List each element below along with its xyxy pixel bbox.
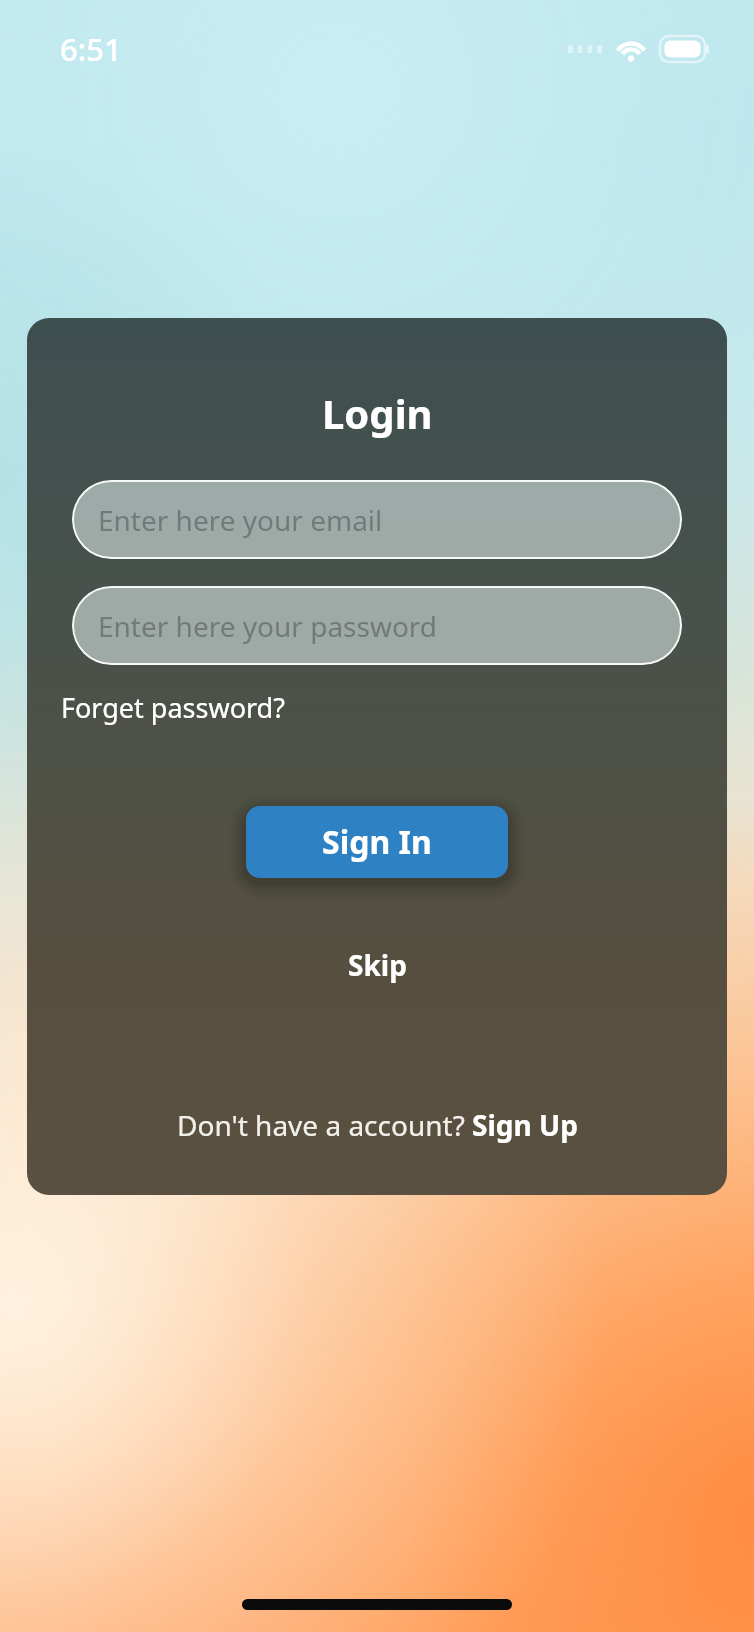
button[interactable]: Forget password? [61, 685, 285, 730]
staticText: Don't have a account? Sign Up [177, 1106, 578, 1144]
button[interactable]: Sign In [246, 806, 508, 878]
button[interactable]: Skip [326, 938, 429, 992]
staticText: 6:51 [60, 28, 122, 70]
staticText: Enter here your email [98, 501, 383, 539]
staticText: Skip [348, 946, 407, 984]
button[interactable]: Enter here your password [72, 586, 682, 665]
staticText: Forget password? [61, 689, 285, 726]
button[interactable]: Don't have a account? Sign Up [167, 1100, 588, 1150]
button[interactable]: Enter here your email [72, 480, 682, 559]
staticText: Sign In [322, 820, 432, 864]
staticText: Enter here your password [98, 607, 438, 645]
staticText: Login [322, 386, 433, 440]
